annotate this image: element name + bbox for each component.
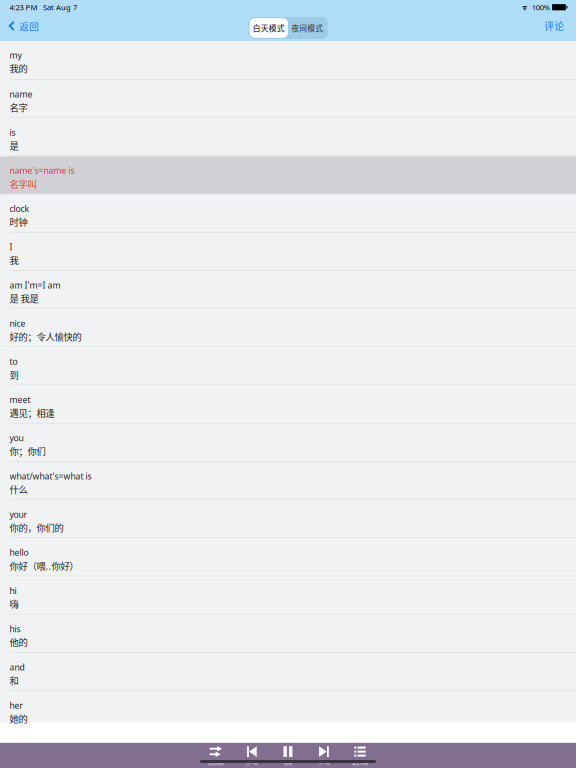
staticText: 暂停 bbox=[284, 761, 292, 766]
button[interactable]: her bbox=[0, 691, 576, 722]
staticText: 自动播放 bbox=[208, 761, 224, 766]
staticText: my bbox=[9, 49, 21, 61]
staticText: 名字叫 bbox=[9, 177, 36, 190]
staticText: is bbox=[9, 126, 15, 138]
button[interactable]: hello bbox=[0, 538, 576, 577]
staticText: 白天模式 bbox=[253, 22, 285, 34]
staticText: 是 我是 bbox=[9, 291, 38, 305]
button[interactable]: to bbox=[0, 347, 576, 386]
staticText: his bbox=[9, 623, 20, 635]
button[interactable]: my bbox=[0, 41, 576, 80]
staticText: 上一句 bbox=[246, 761, 258, 766]
staticText: you bbox=[9, 432, 23, 444]
staticText: 下一句 bbox=[318, 761, 330, 766]
button[interactable]: is bbox=[0, 118, 576, 156]
staticText: nice bbox=[9, 317, 25, 329]
staticText: 我的 bbox=[9, 61, 27, 75]
staticText: hi bbox=[9, 585, 16, 597]
button[interactable]: 暂停 bbox=[270, 746, 306, 757]
staticText: your bbox=[9, 508, 27, 520]
button[interactable]: and bbox=[0, 653, 576, 691]
button[interactable]: am I'm=I am bbox=[0, 271, 576, 309]
button[interactable]: nice bbox=[0, 309, 576, 347]
staticText: 时钟 bbox=[9, 215, 27, 228]
button[interactable]: meet bbox=[0, 386, 576, 424]
staticText: 夜间模式 bbox=[291, 22, 323, 34]
staticText: her bbox=[9, 699, 23, 711]
button[interactable]: 下一句 bbox=[306, 746, 342, 757]
staticText: 4:23 PM bbox=[9, 2, 37, 12]
staticText: 遇见；相逢 bbox=[9, 406, 54, 419]
button[interactable]: 上一句 bbox=[234, 746, 270, 757]
staticText: 100% bbox=[532, 2, 550, 12]
staticText: 嗨 bbox=[9, 597, 18, 610]
staticText: 评论 bbox=[544, 19, 564, 33]
staticText: 他的 bbox=[9, 635, 27, 649]
staticText: 课文列表 bbox=[352, 761, 368, 766]
button[interactable]: 返回 bbox=[0, 14, 45, 37]
button[interactable]: name's=name is bbox=[0, 156, 576, 195]
staticText: 你；你们 bbox=[9, 444, 45, 458]
button[interactable]: 白天模式 bbox=[250, 18, 288, 38]
staticText: 我 bbox=[9, 253, 18, 267]
staticText: 好的；令人愉快的 bbox=[9, 330, 81, 343]
button[interactable]: you bbox=[0, 424, 576, 462]
button[interactable]: 自动播放 bbox=[198, 746, 234, 757]
staticText: I bbox=[9, 241, 12, 253]
staticText: 她的 bbox=[9, 712, 27, 725]
button[interactable]: your bbox=[0, 500, 576, 538]
staticText: 什么 bbox=[9, 482, 27, 496]
staticText: clock bbox=[9, 203, 29, 215]
button[interactable]: hi bbox=[0, 577, 576, 615]
button[interactable]: what/what's=what is bbox=[0, 462, 576, 500]
button[interactable]: 夜间模式 bbox=[288, 18, 326, 38]
staticText: what/what's=what is bbox=[9, 470, 91, 482]
staticText: and bbox=[9, 661, 24, 673]
button[interactable]: his bbox=[0, 615, 576, 653]
staticText: 返回 bbox=[19, 19, 39, 33]
button[interactable]: clock bbox=[0, 195, 576, 233]
staticText: 名字 bbox=[9, 100, 27, 114]
staticText: hello bbox=[9, 547, 28, 558]
staticText: 是 bbox=[9, 139, 18, 152]
button[interactable]: I bbox=[0, 233, 576, 271]
staticText: 和 bbox=[9, 673, 18, 687]
staticText: meet bbox=[9, 394, 30, 406]
staticText: 你好（喂..你好） bbox=[9, 559, 78, 572]
button[interactable]: 评论 bbox=[536, 14, 576, 37]
staticText: name's=name is bbox=[9, 165, 74, 176]
staticText: 到 bbox=[9, 368, 18, 381]
staticText: 你的，你们的 bbox=[9, 521, 63, 534]
button[interactable]: 课文列表 bbox=[342, 746, 378, 757]
staticText: Sat Aug 7 bbox=[43, 2, 77, 12]
staticText: to bbox=[9, 356, 17, 367]
staticText: am I'm=I am bbox=[9, 279, 60, 291]
button[interactable]: name bbox=[0, 80, 576, 118]
staticText: name bbox=[9, 88, 32, 100]
